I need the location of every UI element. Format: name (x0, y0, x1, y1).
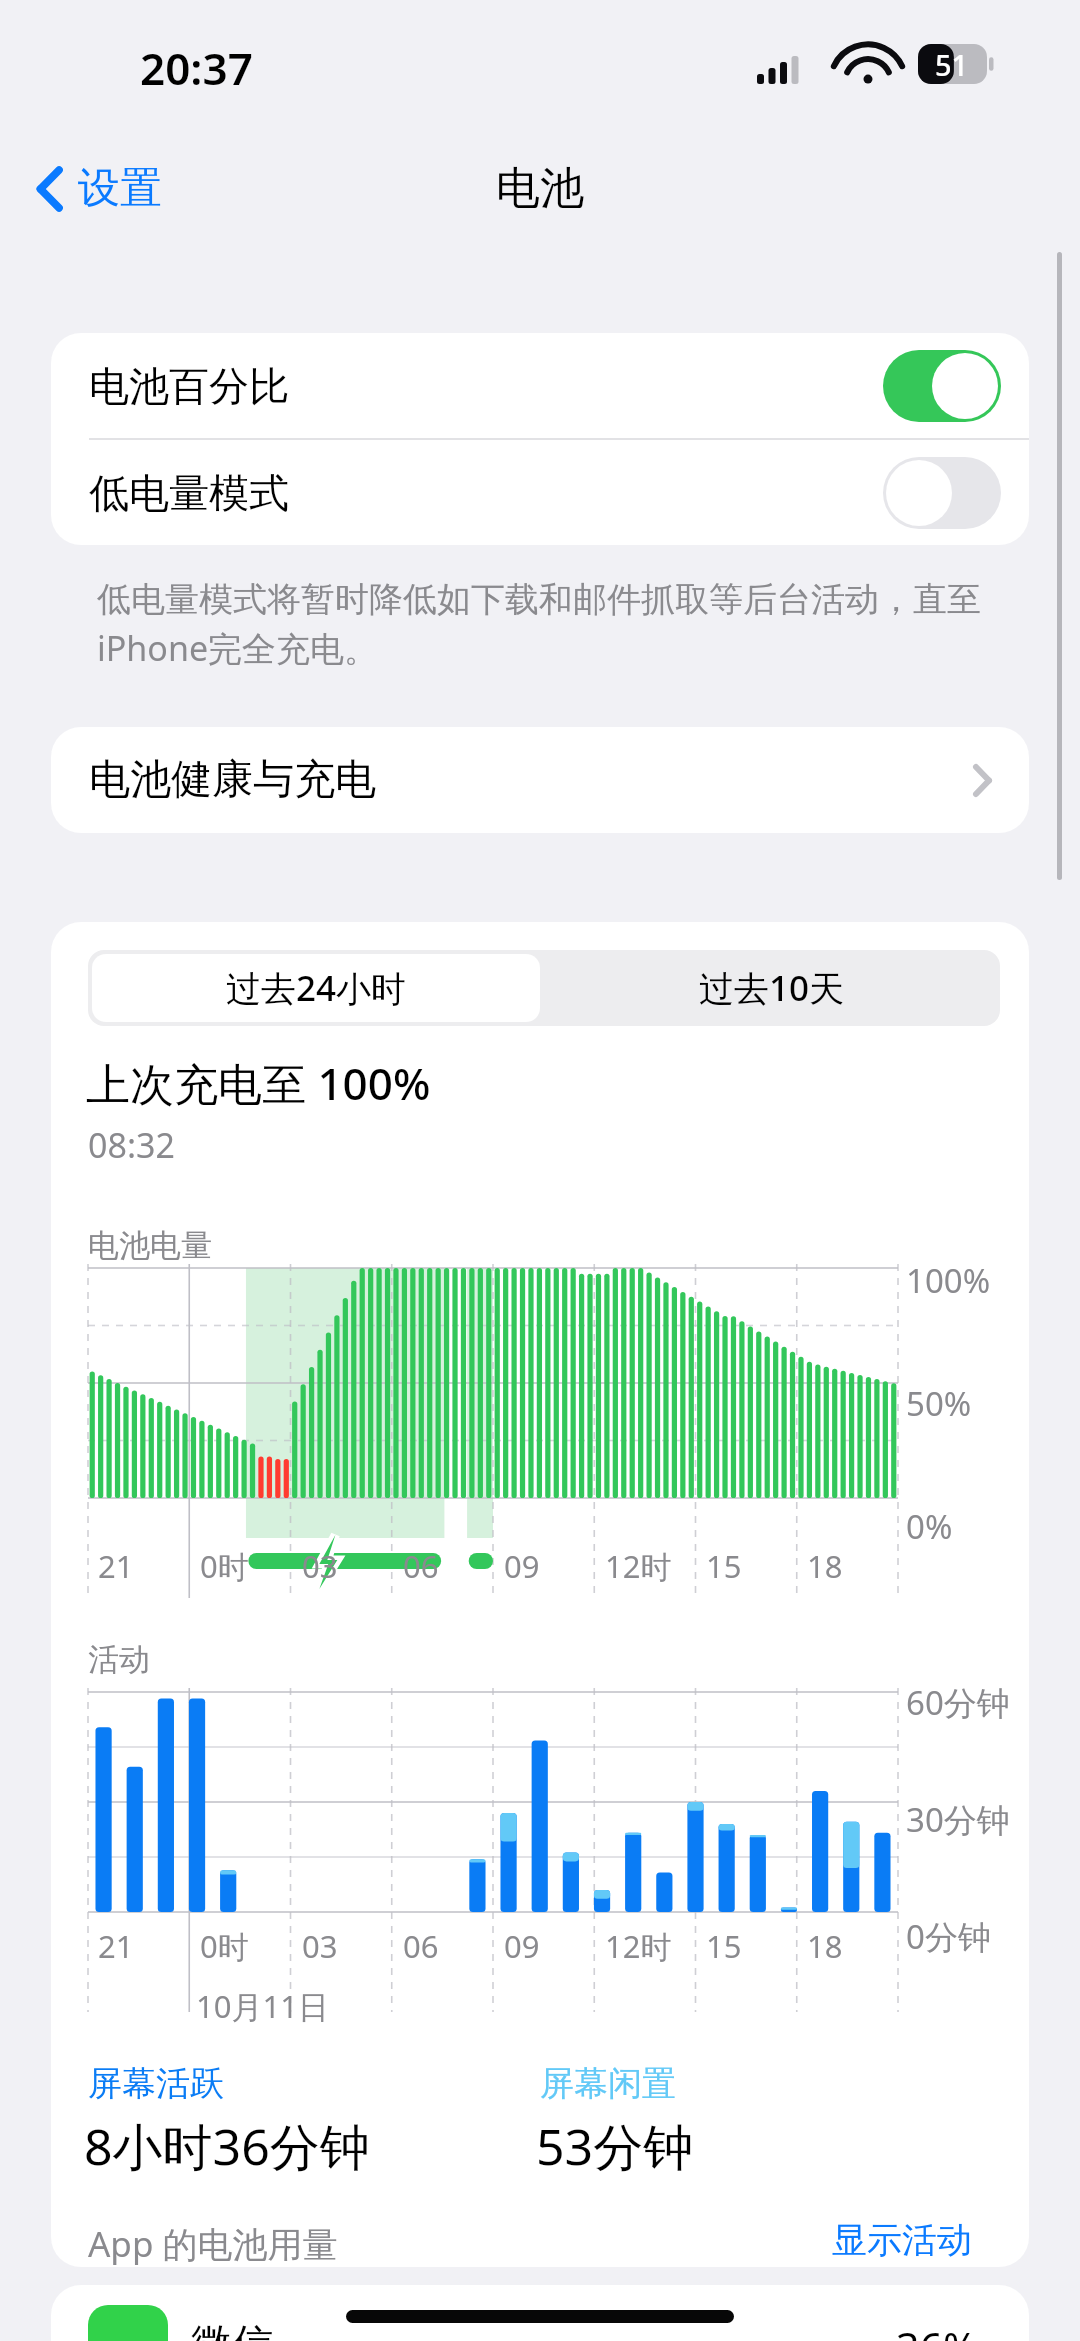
button[interactable]: 低电量模式 (51, 440, 1029, 545)
staticText: 电池电量 (88, 1226, 212, 1265)
staticText: 21 (98, 1925, 134, 1967)
button[interactable]: 微信 (51, 2285, 1029, 2341)
staticText: App 的电池用量 (88, 2220, 338, 2268)
button[interactable]: Back (26, 152, 174, 225)
button[interactable]: 电池百分比 (51, 333, 1029, 438)
staticText: 低电量模式 (89, 468, 289, 518)
staticText: 电池百分比 (89, 361, 289, 411)
staticText: 20:37 (140, 38, 253, 98)
other: Back (38, 167, 62, 211)
staticText: 06 (403, 1545, 439, 1587)
staticText: 0% (906, 1504, 953, 1549)
staticText: 36% (896, 2319, 977, 2341)
staticText: 低电量模式将暂时降低如下载和邮件抓取等后台活动，直至 iPhone完全充电。 (97, 578, 1027, 671)
staticText: 09 (504, 1925, 540, 1967)
button[interactable]: 电池健康与充电 (51, 727, 1029, 833)
staticText: 微信 (191, 2319, 273, 2341)
staticText: 15 (706, 1925, 742, 1967)
staticText: 50% (906, 1381, 972, 1426)
button[interactable]: 过去24小时 (92, 954, 540, 1022)
staticText: 过去10天 (699, 964, 845, 1012)
button[interactable]: 显示活动 (826, 2212, 978, 2268)
staticText: 30分钟 (906, 1797, 1010, 1842)
staticText: 屏幕闲置 (540, 2062, 676, 2105)
staticText: 设置 (78, 162, 162, 215)
staticText: 03 (302, 1545, 338, 1587)
staticText: 电池健康与充电 (89, 754, 376, 806)
staticText: 100% (906, 1258, 991, 1303)
staticText: 51 (935, 45, 969, 84)
staticText: 活动 (88, 1640, 150, 1679)
staticText: 06 (403, 1925, 439, 1967)
staticText: 15 (706, 1545, 742, 1587)
staticText: 18 (807, 1925, 843, 1967)
staticText: 8小时36分钟 (84, 2112, 370, 2180)
staticText: 12时 (605, 1925, 672, 1967)
staticText: 0时 (200, 1925, 249, 1967)
staticText: 21 (98, 1545, 134, 1587)
staticText: 过去24小时 (226, 964, 407, 1012)
staticText: 12时 (605, 1545, 672, 1587)
staticText: 18 (807, 1545, 843, 1587)
staticText: 53分钟 (536, 2112, 694, 2180)
staticText: 电池 (0, 161, 1080, 216)
staticText: 03 (302, 1925, 338, 1967)
staticText: 60分钟 (906, 1680, 1010, 1725)
button[interactable]: 过去10天 (548, 954, 996, 1022)
staticText: 08:32 (88, 1122, 175, 1168)
staticText: 09 (504, 1545, 540, 1587)
staticText: 0时 (200, 1545, 249, 1587)
staticText: 上次充电至 100% (86, 1053, 431, 1113)
staticText: 10月11日 (196, 1985, 329, 2027)
staticText: 屏幕活跃 (88, 2062, 224, 2105)
staticText: 0分钟 (906, 1914, 991, 1959)
staticText: 显示活动 (832, 2218, 972, 2262)
